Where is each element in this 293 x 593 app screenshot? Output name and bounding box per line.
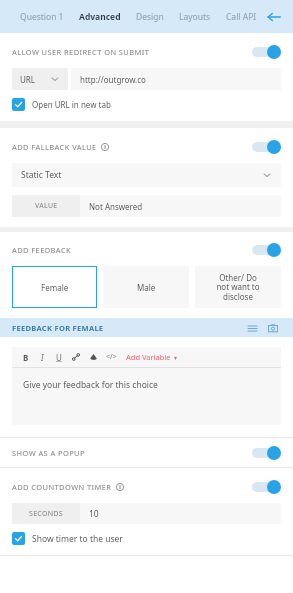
staticText: Female xyxy=(41,282,69,293)
staticText: FEEDBACK FOR FEMALE xyxy=(12,323,104,333)
staticText: ALLOW USER REDIRECT ON SUBMIT xyxy=(12,47,150,57)
staticText: Layouts xyxy=(179,11,211,23)
button[interactable]: Give your feedback for this choice xyxy=(12,368,281,425)
staticText: SHOW AS A POPUP xyxy=(12,448,85,458)
staticText: Not Answered xyxy=(89,201,143,212)
button[interactable]: B xyxy=(19,352,33,363)
button[interactable]: Add Variable xyxy=(126,352,178,362)
button[interactable]: Show timer to the user xyxy=(12,532,123,545)
button[interactable]: Question 1 xyxy=(18,5,66,29)
button[interactable]: Toggle xyxy=(251,44,281,60)
staticText: I xyxy=(41,352,44,363)
staticText: ADD COUNTDOWN TIMER xyxy=(12,482,112,492)
staticText: Static Text xyxy=(21,169,62,181)
staticText: URL xyxy=(20,74,36,85)
button[interactable]: Female xyxy=(12,266,97,308)
staticText: Male xyxy=(137,282,156,293)
button[interactable]: </> xyxy=(104,352,119,362)
staticText: Design xyxy=(136,11,164,23)
staticText: Advanced xyxy=(79,11,121,23)
staticText: http://outgrow.co xyxy=(80,74,146,85)
button[interactable]: Not Answered xyxy=(80,195,281,217)
staticText: SECONDS xyxy=(29,509,63,519)
button[interactable]: 10 xyxy=(80,503,281,524)
staticText: 10 xyxy=(89,508,99,520)
button[interactable]: Toggle xyxy=(251,479,281,495)
staticText: Show timer to the user xyxy=(32,533,123,545)
button[interactable]: Back xyxy=(261,4,287,30)
staticText: VALUE xyxy=(35,201,58,211)
staticText: Give your feedback for this choice xyxy=(23,379,158,391)
staticText: Add Variable xyxy=(126,352,171,362)
button[interactable]: Toggle xyxy=(251,139,281,155)
staticText: Open URL in new tab xyxy=(32,99,111,110)
button[interactable]: Toggle xyxy=(251,445,281,461)
button[interactable]: I xyxy=(37,352,48,363)
staticText: ADD FEEDBACK xyxy=(12,245,72,255)
button[interactable]: Other/ Do not want to disclose xyxy=(195,266,281,308)
button[interactable]: List xyxy=(244,320,260,336)
staticText: </> xyxy=(106,352,117,362)
button[interactable]: http://outgrow.co xyxy=(71,68,281,90)
staticText: Call API xyxy=(226,11,257,23)
button[interactable]: Open URL in new tab xyxy=(12,98,111,111)
button[interactable]: Design xyxy=(134,5,166,29)
staticText: Question 1 xyxy=(20,11,64,23)
button[interactable]: Link xyxy=(70,351,82,363)
button[interactable]: URL xyxy=(12,68,68,90)
button[interactable]: Advanced xyxy=(77,5,123,29)
staticText: B xyxy=(23,352,29,363)
button[interactable]: Text color xyxy=(87,351,99,363)
staticText: ADD FALLBACK VALUE xyxy=(12,142,97,152)
staticText: Other/ Do not want to disclose xyxy=(216,272,260,303)
button[interactable]: Toggle xyxy=(251,242,281,258)
button[interactable]: Call API xyxy=(224,5,259,29)
button[interactable]: U xyxy=(52,352,66,363)
button[interactable]: Static Text xyxy=(12,163,281,187)
button[interactable]: Camera xyxy=(265,320,281,336)
button[interactable]: Male xyxy=(103,266,189,308)
staticText: ▾ xyxy=(174,354,178,361)
staticText: U xyxy=(56,352,62,363)
button[interactable]: Layouts xyxy=(177,5,213,29)
